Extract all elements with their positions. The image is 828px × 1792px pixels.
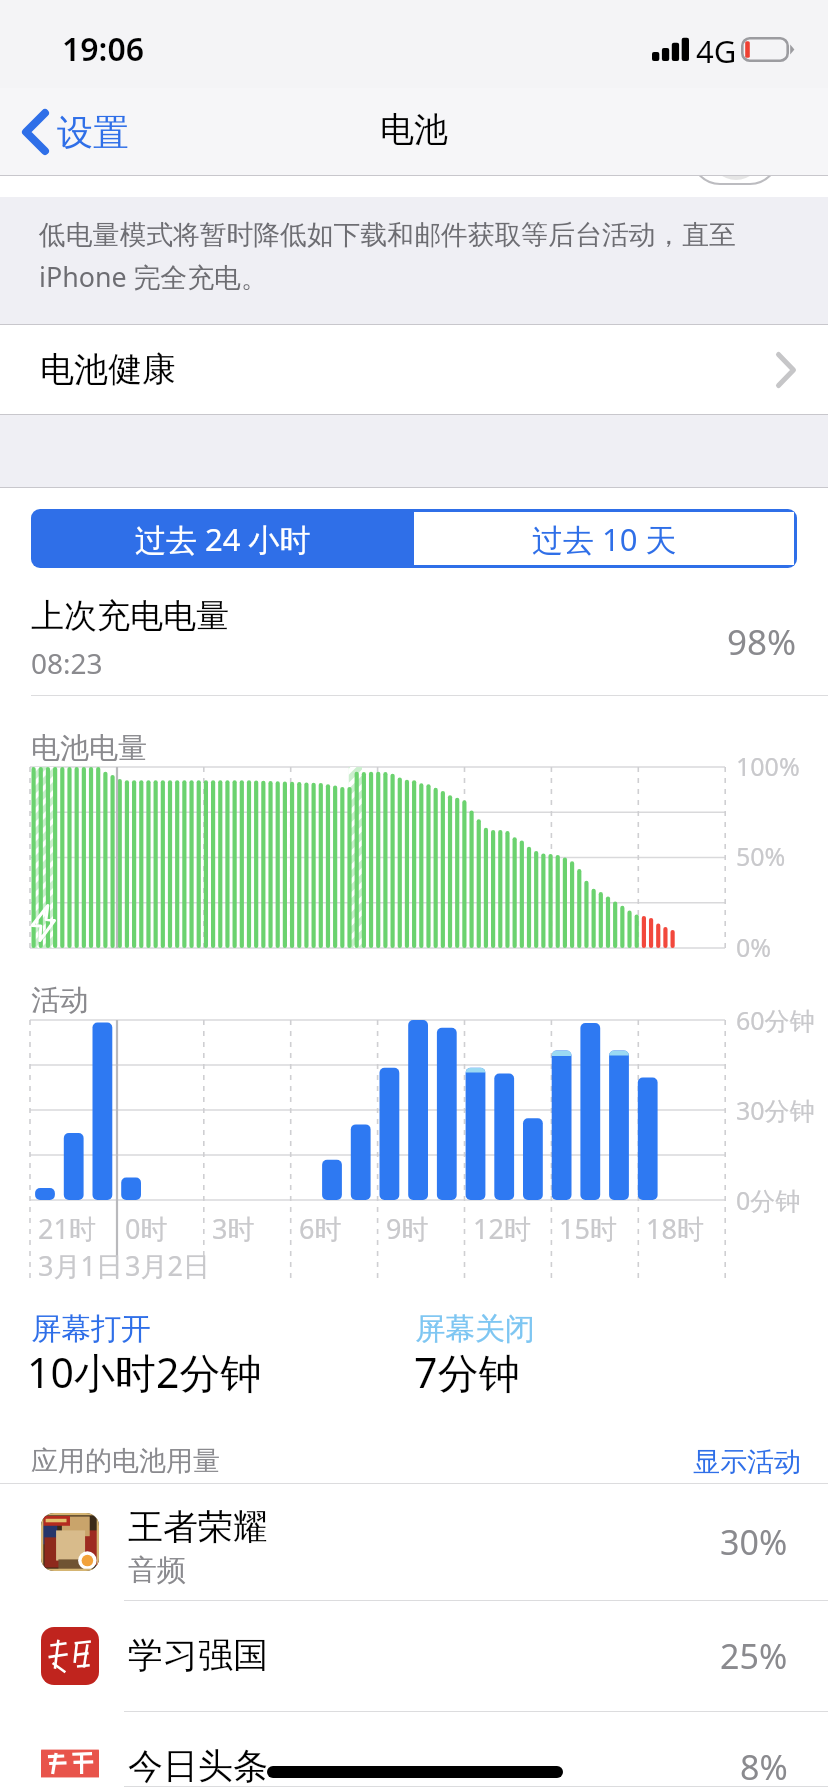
staticText: 100% [736, 749, 800, 783]
staticText: 19:06 [62, 27, 145, 71]
staticText: 30分钟 [736, 1093, 815, 1127]
staticText: 应用的电池用量 [31, 1444, 220, 1478]
staticText: 电池电量 [31, 730, 147, 767]
staticText: 60分钟 [736, 1003, 815, 1037]
staticText: 电池 [380, 108, 448, 151]
button[interactable]: 电池健康 [0, 325, 828, 414]
staticText: 98% [727, 618, 797, 666]
staticText: 低电量模式将暂时降低如下载和邮件获取等后台活动，直至 [39, 218, 736, 252]
staticText: 8% [740, 1744, 788, 1790]
staticText: 0时 [125, 1210, 168, 1247]
staticText: 3月2日 [125, 1247, 210, 1284]
staticText: 4G [696, 30, 737, 72]
staticText: 08:23 [31, 644, 103, 682]
staticText: 显示活动 [693, 1445, 801, 1479]
staticText: 活动 [31, 982, 89, 1019]
staticText: 15时 [559, 1210, 617, 1247]
staticText: 25% [720, 1633, 788, 1679]
staticText: 3月1日 [38, 1247, 123, 1284]
staticText: 过去 10 天 [532, 518, 677, 560]
button[interactable]: 过去 10 天 [414, 512, 794, 565]
staticText: 屏幕关闭 [415, 1310, 535, 1348]
staticText: 今日头条 [128, 1744, 268, 1788]
staticText: 上次充电电量 [31, 595, 229, 637]
staticText: 0分钟 [736, 1183, 801, 1217]
button[interactable]: 设置 [0, 99, 143, 165]
staticText: 6时 [299, 1210, 342, 1247]
staticText: 10小时2分钟 [27, 1344, 262, 1400]
staticText: 18时 [646, 1210, 704, 1247]
staticText: 屏幕打开 [31, 1310, 151, 1348]
staticText: 12时 [473, 1210, 531, 1247]
button[interactable]: 显示活动 [686, 1436, 808, 1488]
button[interactable]: 学习强国 [0, 1601, 828, 1711]
staticText: 50% [736, 839, 786, 873]
staticText: 王者荣耀 [128, 1505, 268, 1549]
button[interactable]: 今日头条 [0, 1712, 828, 1792]
staticText: 9时 [386, 1210, 429, 1247]
button[interactable]: 过去 24 小时 [31, 509, 414, 568]
staticText: 21时 [38, 1210, 96, 1247]
staticText: 7分钟 [414, 1344, 520, 1400]
staticText: 电池健康 [40, 348, 176, 391]
staticText: 0% [736, 930, 772, 964]
staticText: 学习强国 [128, 1633, 268, 1677]
staticText: 音频 [128, 1552, 186, 1589]
staticText: 3时 [212, 1210, 255, 1247]
staticText: iPhone 完全充电。 [39, 258, 268, 295]
button[interactable]: 王者荣耀 [0, 1484, 828, 1600]
staticText: 过去 24 小时 [135, 518, 311, 560]
staticText: 设置 [57, 110, 129, 155]
staticText: 30% [720, 1519, 788, 1565]
